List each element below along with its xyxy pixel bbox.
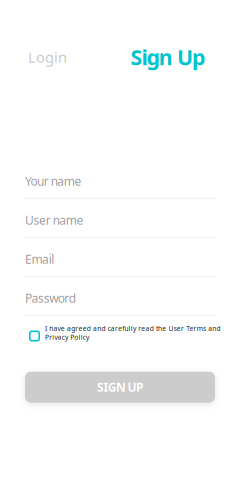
staticText: Your name <box>25 173 81 189</box>
button[interactable]: Agree to User Terms and Privacy Policy <box>29 324 40 341</box>
staticText: Login <box>28 47 67 67</box>
staticText: Password <box>25 290 76 306</box>
staticText: Sign Up <box>130 43 205 71</box>
button[interactable]: Login <box>28 45 67 69</box>
button[interactable]: Sign Up <box>130 45 205 69</box>
staticText: User name <box>25 212 83 228</box>
staticText: SIGN UP <box>97 379 143 395</box>
staticText: I have agreed and carefully read the Use… <box>45 324 220 342</box>
staticText: Email <box>25 251 54 267</box>
button[interactable]: SIGN UP <box>25 372 215 403</box>
